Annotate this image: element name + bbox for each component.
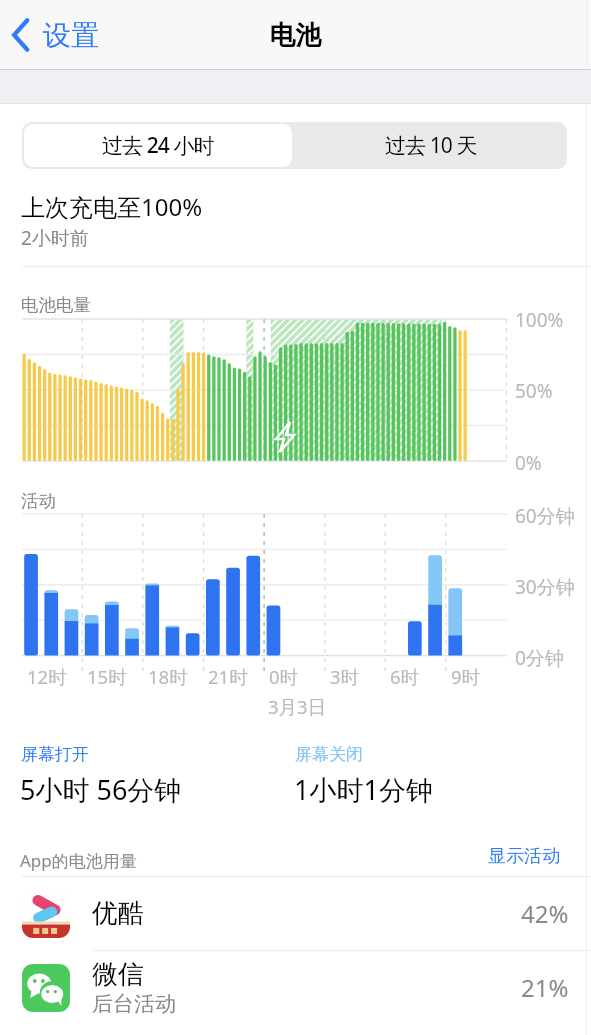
staticText: 0时 [269,664,299,689]
button[interactable]: 屏幕打开 [20,744,182,808]
staticText: 9时 [451,664,481,689]
staticText: 5小时 56分钟 [20,771,182,808]
button[interactable]: 过去 24 小时 [24,124,292,167]
staticText: 42% [521,897,569,930]
staticText: 50% [515,378,553,404]
staticText: 12时 [27,664,67,689]
staticText: 设置 [43,18,99,53]
staticText: 30分钟 [515,574,575,600]
staticText: 21% [521,971,569,1004]
staticText: 活动 [21,490,56,512]
staticText: 0% [515,450,542,476]
staticText: 1小时1分钟 [294,771,433,808]
staticText: 微信 [92,958,144,991]
staticText: 优酷 [92,897,521,930]
staticText: 100% [515,307,564,333]
button[interactable]: 过去 10 天 [294,122,567,169]
staticText: 21时 [208,664,248,689]
staticText: 0分钟 [515,645,564,671]
staticText: 电池电量 [21,294,91,316]
staticText: 3时 [330,664,360,689]
staticText: App的电池用量 [20,849,137,872]
staticText: 60分钟 [515,503,575,529]
staticText: 上次充电至100% [21,190,203,223]
button[interactable]: 微信 [0,951,591,1024]
button[interactable]: 显示活动 [488,845,560,868]
staticText: 18时 [148,664,188,689]
button[interactable]: 优酷 [0,877,591,950]
staticText: 后台活动 [92,991,176,1017]
staticText: 3月3日 [268,694,327,719]
staticText: 屏幕打开 [21,744,89,765]
button[interactable]: 设置 [12,10,99,60]
staticText: 6时 [390,664,420,689]
staticText: 过去 24 小时 [102,131,214,160]
staticText: 2小时前 [21,225,89,251]
staticText: 电池 [0,19,591,52]
staticText: 显示活动 [488,845,560,868]
staticText: 15时 [87,664,127,689]
staticText: 过去 10 天 [385,131,477,160]
staticText: 屏幕关闭 [295,744,363,765]
button[interactable]: 屏幕关闭 [294,744,433,808]
